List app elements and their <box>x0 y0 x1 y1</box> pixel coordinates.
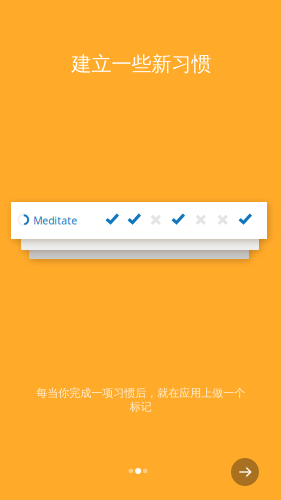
staticText: 每当你完成一项习惯后，就在应用上做一个标记 <box>36 386 245 414</box>
staticText: 建立一些新习惯 <box>71 51 211 77</box>
button[interactable]: Next <box>231 458 259 486</box>
staticText: Meditate <box>33 213 77 228</box>
button[interactable]: Page 2 of 3 <box>122 468 141 474</box>
